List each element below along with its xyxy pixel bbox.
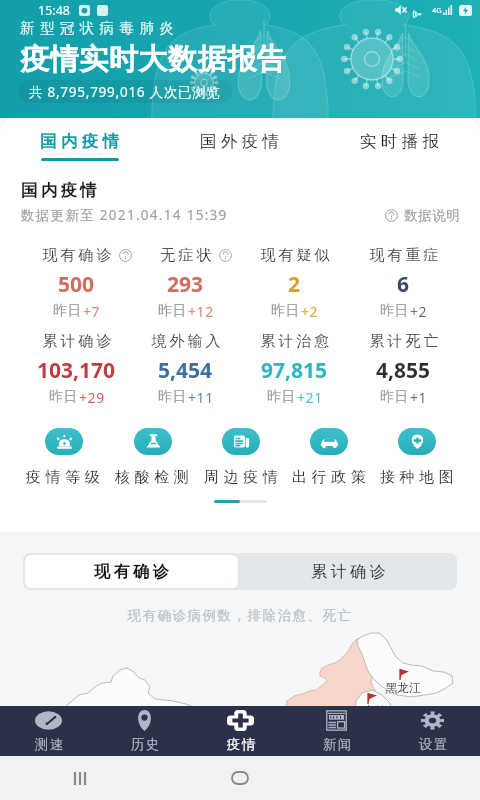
button[interactable]: 实时播报 bbox=[320, 118, 480, 169]
staticText: 共 8,795,799,016 人次已浏览 bbox=[29, 83, 221, 101]
staticText: 293 bbox=[167, 270, 204, 299]
button[interactable]: 国外疫情 bbox=[160, 118, 320, 169]
staticText: 累计确诊 bbox=[311, 562, 390, 582]
staticText: 昨日 bbox=[53, 302, 83, 320]
staticText: 昨日 bbox=[380, 388, 410, 406]
staticText: 昨日 bbox=[271, 302, 301, 320]
staticText: 现有确诊 bbox=[94, 562, 173, 582]
button[interactable]: 疫情等级 bbox=[19, 428, 108, 487]
staticText: 5,454 bbox=[158, 356, 213, 385]
staticText: 4,855 bbox=[376, 356, 431, 385]
button[interactable]: 累计治愈 bbox=[240, 332, 349, 407]
staticText: 97,815 bbox=[261, 356, 328, 385]
staticText: 核酸检测 bbox=[115, 468, 194, 487]
button[interactable]: 累计死亡 bbox=[349, 332, 458, 407]
staticText: 新型冠状病毒肺炎 bbox=[20, 19, 180, 37]
button[interactable]: Recent apps bbox=[69, 767, 91, 789]
staticText: 现有重症 bbox=[368, 246, 440, 265]
staticText: 境外输入 bbox=[150, 332, 222, 351]
staticText: 黑龙江 bbox=[385, 680, 421, 695]
staticText: 疫情等级 bbox=[26, 468, 105, 487]
staticText: +21 bbox=[297, 388, 323, 407]
staticText: 昨日 bbox=[49, 388, 79, 406]
staticText: 实时播报 bbox=[360, 131, 444, 152]
button[interactable]: 设置 bbox=[384, 706, 480, 756]
staticText: 2 bbox=[288, 270, 301, 299]
staticText: 接种地图 bbox=[380, 468, 459, 487]
staticText: 15:48 bbox=[38, 2, 70, 19]
staticText: 昨日 bbox=[158, 388, 188, 406]
button[interactable]: Home bbox=[228, 766, 252, 790]
button[interactable]: 累计确诊 bbox=[240, 553, 457, 590]
button[interactable]: 现有确诊 bbox=[22, 246, 131, 321]
staticText: 现有确诊病例数，排除治愈、死亡 bbox=[0, 607, 480, 624]
button[interactable]: 现有疑似 bbox=[240, 246, 349, 321]
staticText: 出行政策 bbox=[292, 468, 371, 487]
staticText: +7 bbox=[83, 302, 101, 321]
staticText: +29 bbox=[79, 388, 105, 407]
staticText: 累计死亡 bbox=[368, 332, 440, 351]
staticText: 设置 bbox=[418, 736, 448, 753]
staticText: 103,170 bbox=[37, 356, 116, 385]
button[interactable]: 核酸检测 bbox=[108, 428, 197, 487]
staticText: +12 bbox=[188, 302, 214, 321]
button[interactable]: 国内疫情 bbox=[0, 118, 160, 169]
button[interactable]: 累计确诊 bbox=[22, 332, 131, 407]
staticText: +1 bbox=[410, 388, 428, 407]
button[interactable]: 接种地图 bbox=[373, 428, 461, 487]
staticText: 500 bbox=[58, 270, 95, 299]
staticText: 新闻 bbox=[322, 736, 352, 753]
staticText: 国内疫情 bbox=[40, 131, 124, 152]
staticText: 国内疫情 bbox=[21, 180, 100, 201]
button[interactable]: 出行政策 bbox=[285, 428, 373, 487]
staticText: 昨日 bbox=[267, 388, 297, 406]
staticText: 昨日 bbox=[380, 302, 410, 320]
staticText: +2 bbox=[410, 302, 428, 321]
staticText: 现有疑似 bbox=[259, 246, 331, 265]
staticText: 累计确诊 bbox=[41, 332, 113, 351]
button[interactable]: 境外输入 bbox=[131, 332, 240, 407]
button[interactable]: 历史 bbox=[96, 706, 192, 756]
staticText: 疫情 bbox=[226, 736, 256, 753]
staticText: 历史 bbox=[130, 736, 160, 753]
staticText: 无症状 bbox=[159, 246, 213, 265]
staticText: 测速 bbox=[34, 736, 64, 753]
staticText: 4G bbox=[432, 5, 442, 15]
staticText: 数据更新至 2021.04.14 15:39 bbox=[21, 206, 228, 224]
button[interactable]: 无症状 bbox=[131, 246, 240, 321]
button[interactable]: 现有确诊 bbox=[25, 555, 238, 588]
staticText: 国外疫情 bbox=[200, 131, 284, 152]
staticText: 吉林 bbox=[362, 703, 386, 706]
button[interactable]: 现有重症 bbox=[349, 246, 458, 321]
staticText: 6 bbox=[397, 270, 410, 299]
staticText: +11 bbox=[188, 388, 214, 407]
staticText: 现有确诊 bbox=[41, 246, 113, 265]
button[interactable]: 疫情 bbox=[192, 706, 288, 756]
button[interactable]: 数据说明 bbox=[385, 207, 460, 224]
staticText: 昨日 bbox=[158, 302, 188, 320]
button[interactable]: 新闻 bbox=[288, 706, 384, 756]
staticText: 累计治愈 bbox=[259, 332, 331, 351]
staticText: 周边疫情 bbox=[204, 468, 283, 487]
staticText: +2 bbox=[301, 302, 319, 321]
staticText: 数据说明 bbox=[404, 207, 460, 224]
staticText: 疫情实时大数据报告 bbox=[20, 41, 287, 78]
button[interactable]: 周边疫情 bbox=[197, 428, 285, 487]
button[interactable]: 测速 bbox=[0, 706, 96, 756]
